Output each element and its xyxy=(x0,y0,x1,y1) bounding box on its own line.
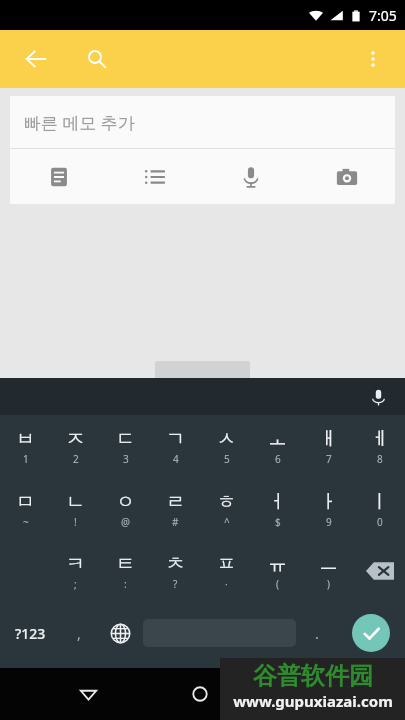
button[interactable]: ?123 xyxy=(0,602,60,664)
staticText: ㅈ xyxy=(66,427,85,451)
button[interactable]: ㅁ xyxy=(0,478,50,540)
button[interactable]: ㄱ xyxy=(150,415,201,478)
staticText: ~ xyxy=(23,515,29,529)
button[interactable]: ㅡ xyxy=(303,540,354,602)
staticText: 6 xyxy=(275,452,281,466)
button[interactable]: ㅐ xyxy=(303,415,354,478)
staticText: ^ xyxy=(224,515,230,529)
button[interactable]: ㅣ xyxy=(354,478,405,540)
button[interactable]: Backspace xyxy=(354,540,405,602)
staticText: 谷普软件园 xyxy=(253,661,373,691)
staticText: ; xyxy=(74,577,77,591)
button[interactable]: ㅍ xyxy=(201,540,252,602)
staticText: ) xyxy=(327,577,330,591)
staticText: ㅋ xyxy=(66,552,85,576)
staticText: 5 xyxy=(224,452,230,466)
button[interactable]: ㅋ xyxy=(50,540,100,602)
staticText: 0 xyxy=(377,515,383,529)
staticText: @ xyxy=(121,515,130,529)
button[interactable]: ㅊ xyxy=(150,540,201,602)
button[interactable]: , xyxy=(60,602,98,664)
button[interactable]: ㅇ xyxy=(100,478,150,540)
staticText: ㅊ xyxy=(166,552,185,576)
button[interactable]: ㅏ xyxy=(303,478,354,540)
button[interactable]: Checklist xyxy=(107,149,203,204)
staticText: ?123 xyxy=(15,624,46,643)
button[interactable]: ㅎ xyxy=(201,478,252,540)
staticText: 9 xyxy=(326,515,332,529)
staticText: ㅂ xyxy=(16,427,35,451)
staticText: ㅗ xyxy=(268,427,287,451)
button[interactable]: ㅅ xyxy=(201,415,252,478)
button[interactable]: Back xyxy=(14,37,58,81)
staticText: ㅅ xyxy=(217,427,236,451)
staticText: 2 xyxy=(73,452,79,466)
staticText: ㅐ xyxy=(319,427,338,451)
staticText: ㄷ xyxy=(116,427,135,451)
staticText: ㅏ xyxy=(319,490,338,514)
staticText: # xyxy=(172,515,179,529)
staticText: 빠른 메모 추가 xyxy=(24,111,135,134)
button[interactable]: ㄴ xyxy=(50,478,100,540)
staticText: ! xyxy=(74,515,77,529)
button[interactable]: 빠른 메모 추가 xyxy=(10,96,395,148)
staticText: ㅣ xyxy=(370,490,389,514)
staticText: $ xyxy=(275,515,281,529)
button[interactable]: ㅌ xyxy=(100,540,150,602)
staticText: ㅓ xyxy=(268,490,287,514)
staticText: , xyxy=(77,624,81,643)
staticText: 3 xyxy=(123,452,129,466)
staticText: ㅔ xyxy=(370,427,389,451)
button[interactable]: ㅗ xyxy=(252,415,303,478)
staticText: 7 xyxy=(326,452,332,466)
staticText: 1 xyxy=(23,452,29,466)
button[interactable]: Home xyxy=(180,674,220,714)
button[interactable]: Photo xyxy=(299,149,395,204)
button[interactable]: ㅓ xyxy=(252,478,303,540)
staticText: ㅠ xyxy=(268,552,287,576)
button[interactable]: Search xyxy=(75,37,119,81)
staticText: ㅎ xyxy=(217,490,236,514)
staticText: 7:05 xyxy=(369,6,397,25)
staticText: ㅇ xyxy=(116,490,135,514)
button[interactable]: ㅈ xyxy=(50,415,100,478)
staticText: ㅡ xyxy=(319,552,338,576)
staticText: ㅁ xyxy=(16,490,35,514)
staticText: www.gupuxiazai.com xyxy=(233,691,393,711)
button[interactable]: . xyxy=(296,602,337,664)
button[interactable]: ㄷ xyxy=(100,415,150,478)
staticText: ㄹ xyxy=(166,490,185,514)
button[interactable]: ㄹ xyxy=(150,478,201,540)
staticText: ㄱ xyxy=(166,427,185,451)
staticText: ? xyxy=(173,577,178,591)
button[interactable]: ㅔ xyxy=(354,415,405,478)
staticText: ㅌ xyxy=(116,552,135,576)
button[interactable]: ㅂ xyxy=(0,415,50,478)
button[interactable]: ㅠ xyxy=(252,540,303,602)
button[interactable]: Change language xyxy=(98,602,143,664)
staticText: 8 xyxy=(377,452,383,466)
staticText: : xyxy=(124,577,127,591)
button[interactable]: More options xyxy=(351,37,395,81)
staticText: 4 xyxy=(173,452,179,466)
button[interactable]: Voice memo xyxy=(203,149,299,204)
button[interactable]: Hide keyboard xyxy=(68,674,108,714)
staticText: ㄴ xyxy=(66,490,85,514)
button[interactable]: Drawing note xyxy=(10,149,107,204)
staticText: . xyxy=(315,624,319,643)
button[interactable]: Done xyxy=(352,614,390,652)
staticText: · xyxy=(225,577,228,591)
staticText: ( xyxy=(276,577,279,591)
button[interactable]: Voice input xyxy=(363,382,393,412)
staticText: ㅍ xyxy=(217,552,236,576)
